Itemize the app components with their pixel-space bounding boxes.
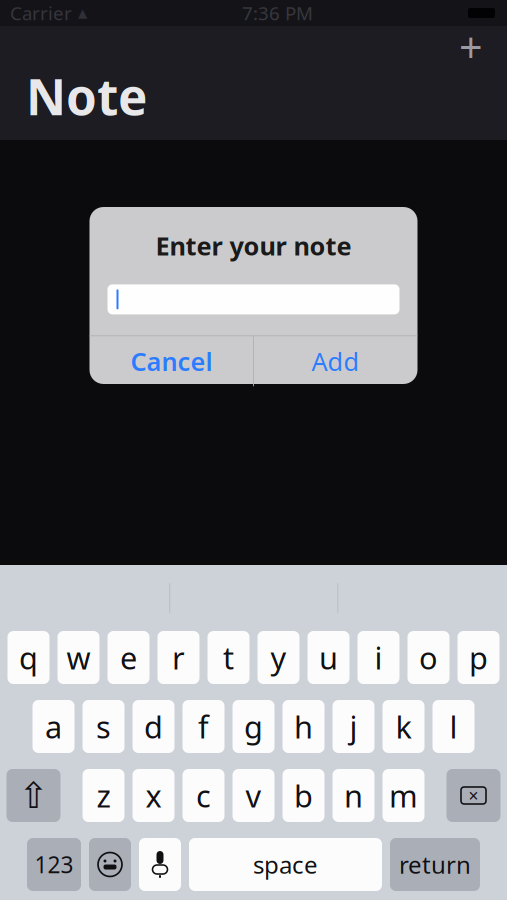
button[interactable]: return [390, 838, 480, 891]
staticText: × [468, 784, 478, 807]
button[interactable]: z [82, 769, 124, 822]
staticText: p [469, 637, 488, 678]
button[interactable]: q [7, 631, 49, 684]
button[interactable]: x [132, 769, 174, 822]
button[interactable]: u [307, 631, 349, 684]
staticText: return [399, 849, 471, 880]
button[interactable]: 123 [27, 838, 81, 891]
staticText: s [96, 706, 111, 747]
staticText: Note [26, 63, 147, 129]
button[interactable]: Add note [449, 27, 493, 67]
staticText: l [449, 706, 457, 747]
staticText: c [196, 775, 211, 816]
button[interactable]: s [82, 700, 124, 753]
staticText: h [294, 706, 313, 747]
staticText: v [245, 775, 261, 816]
button[interactable]: l [432, 700, 474, 753]
staticText: 123 [34, 849, 73, 879]
staticText: u [319, 637, 338, 678]
button[interactable]: d [132, 700, 174, 753]
button[interactable]: o [407, 631, 449, 684]
staticText: ▲ [78, 6, 87, 20]
staticText: g [244, 706, 263, 747]
staticText: o [419, 637, 438, 678]
staticText: Add [311, 344, 359, 378]
staticText: x [145, 775, 161, 816]
staticText: d [144, 706, 163, 747]
button[interactable]: Add [254, 336, 417, 386]
staticText: r [172, 637, 185, 678]
staticText: i [374, 637, 382, 678]
button[interactable]: g [232, 700, 274, 753]
button[interactable]: j [332, 700, 374, 753]
staticText: a [45, 706, 62, 747]
button[interactable]: Shift [6, 769, 60, 822]
staticText: t [223, 637, 234, 678]
button[interactable]: Dictate [139, 838, 181, 891]
staticText: j [349, 706, 357, 747]
button[interactable]: h [282, 700, 324, 753]
staticText: space [253, 849, 318, 880]
button[interactable]: f [182, 700, 224, 753]
staticText: Carrier [10, 1, 72, 25]
button[interactable]: r [157, 631, 199, 684]
staticText: z [96, 775, 110, 816]
staticText: f [198, 706, 209, 747]
button[interactable]: i [357, 631, 399, 684]
button[interactable]: m [382, 769, 424, 822]
button[interactable]: v [232, 769, 274, 822]
staticText: Enter your note [155, 229, 351, 262]
staticText: k [395, 706, 411, 747]
button[interactable]: n [332, 769, 374, 822]
staticText: 7:36 PM [242, 1, 313, 25]
button[interactable]: b [282, 769, 324, 822]
staticText: b [294, 775, 313, 816]
staticText: w [66, 637, 90, 678]
button[interactable]: Emoji [89, 838, 131, 891]
staticText: Cancel [131, 344, 213, 378]
button[interactable]: space [189, 838, 382, 891]
button[interactable]: y [257, 631, 299, 684]
button[interactable]: a [32, 700, 74, 753]
button[interactable]: c [182, 769, 224, 822]
button[interactable]: t [207, 631, 249, 684]
staticText: n [344, 775, 363, 816]
staticText: m [389, 775, 418, 816]
staticText: y [270, 637, 286, 678]
button[interactable]: e [107, 631, 149, 684]
button[interactable]: Delete [446, 769, 500, 822]
staticText: ⇧ [18, 775, 48, 816]
staticText: e [120, 637, 137, 678]
staticText: q [19, 637, 38, 678]
button[interactable]: p [457, 631, 499, 684]
button[interactable]: w [57, 631, 99, 684]
button[interactable]: k [382, 700, 424, 753]
button[interactable]: Cancel [90, 336, 253, 386]
staticText: + [459, 20, 483, 74]
